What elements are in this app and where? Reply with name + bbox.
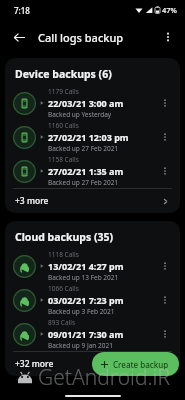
staticText: 1158 Calls <box>48 155 79 164</box>
button[interactable]: Create backup <box>92 352 179 376</box>
staticText: 7:18 <box>14 5 30 16</box>
button[interactable]: More options <box>155 24 181 50</box>
staticText: 1118 Calls <box>48 250 79 259</box>
button[interactable]: 1066 Calls <box>5 283 180 317</box>
button[interactable]: 893 Calls <box>5 317 180 351</box>
button[interactable]: Backup options <box>156 128 174 146</box>
staticText: 03/02/21 7:23 pm <box>48 294 124 306</box>
staticText: 893 Calls <box>48 318 76 327</box>
button[interactable]: Backup options <box>156 325 174 343</box>
button[interactable]: +32 more <box>5 352 180 376</box>
button[interactable]: 1179 Calls <box>5 86 180 120</box>
button[interactable]: Backup options <box>156 162 174 180</box>
button[interactable]: Backup options <box>156 291 174 309</box>
staticText: +3 more <box>15 195 49 207</box>
staticText: 09/01/21 7:30 am <box>48 328 124 340</box>
button[interactable]: Backup options <box>156 94 174 112</box>
button[interactable]: Backup options <box>156 257 174 275</box>
staticText: 27/02/21 12:03 pm <box>48 131 129 143</box>
staticText: 47% <box>162 5 177 15</box>
button[interactable]: 1160 Calls <box>5 120 180 154</box>
staticText: Cloud backups (35) <box>15 230 114 244</box>
staticText: Device backups (6) <box>15 67 112 81</box>
button[interactable]: +3 more <box>5 189 180 213</box>
button[interactable]: Back <box>6 24 32 50</box>
staticText: Backed up Yesterday <box>48 110 112 119</box>
staticText: 1179 Calls <box>48 87 79 96</box>
staticText: Backed up 3 Feb 2021 <box>48 307 115 316</box>
staticText: 1066 Calls <box>48 284 79 293</box>
staticText: Backed up 13 Feb 2021 <box>48 273 119 282</box>
staticText: Call logs backup <box>38 30 124 45</box>
staticText: 13/02/21 4:27 pm <box>48 260 124 272</box>
staticText: +32 more <box>15 358 54 370</box>
staticText: Backed up 9 Jan 2021 <box>48 341 113 350</box>
staticText: 27/02/21 1:35 am <box>48 165 124 177</box>
staticText: 22/03/21 3:00 am <box>48 97 124 109</box>
staticText: 1160 Calls <box>48 121 79 130</box>
staticText: Backed up 27 Feb 2021 <box>48 144 119 153</box>
staticText: Backed up 27 Feb 2021 <box>48 178 119 187</box>
button[interactable]: 1118 Calls <box>5 249 180 283</box>
button[interactable]: 1158 Calls <box>5 154 180 188</box>
staticText: Create backup <box>113 359 169 370</box>
staticText: GetAndroid.iR <box>38 363 171 392</box>
